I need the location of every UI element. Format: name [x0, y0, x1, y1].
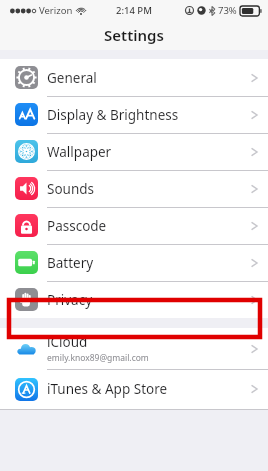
- staticText: Wallpaper: [47, 143, 112, 161]
- staticText: General: [47, 69, 97, 87]
- button[interactable]: Sounds: [0, 170, 268, 207]
- staticText: iCloud: [47, 333, 88, 351]
- button[interactable]: Privacy: [0, 281, 268, 318]
- staticText: Privacy: [47, 291, 93, 309]
- button[interactable]: Passcode: [0, 207, 268, 244]
- staticText: Sounds: [47, 180, 95, 198]
- button[interactable]: Display & Brightness: [0, 96, 268, 133]
- staticText: iTunes & App Store: [47, 380, 168, 398]
- staticText: Battery: [47, 254, 94, 272]
- staticText: 73%: [218, 4, 237, 17]
- staticText: Settings: [104, 25, 164, 45]
- staticText: emily.knox89@gmail.com: [47, 352, 149, 364]
- button[interactable]: Battery: [0, 244, 268, 281]
- staticText: Passcode: [47, 217, 107, 235]
- button[interactable]: iCloud: [0, 328, 268, 369]
- button[interactable]: Wallpaper: [0, 133, 268, 170]
- button[interactable]: General: [0, 59, 268, 96]
- button[interactable]: iTunes & App Store: [0, 369, 268, 409]
- staticText: Verizon: [39, 4, 73, 17]
- staticText: 2:14 PM: [116, 4, 152, 17]
- staticText: Display & Brightness: [47, 106, 179, 124]
